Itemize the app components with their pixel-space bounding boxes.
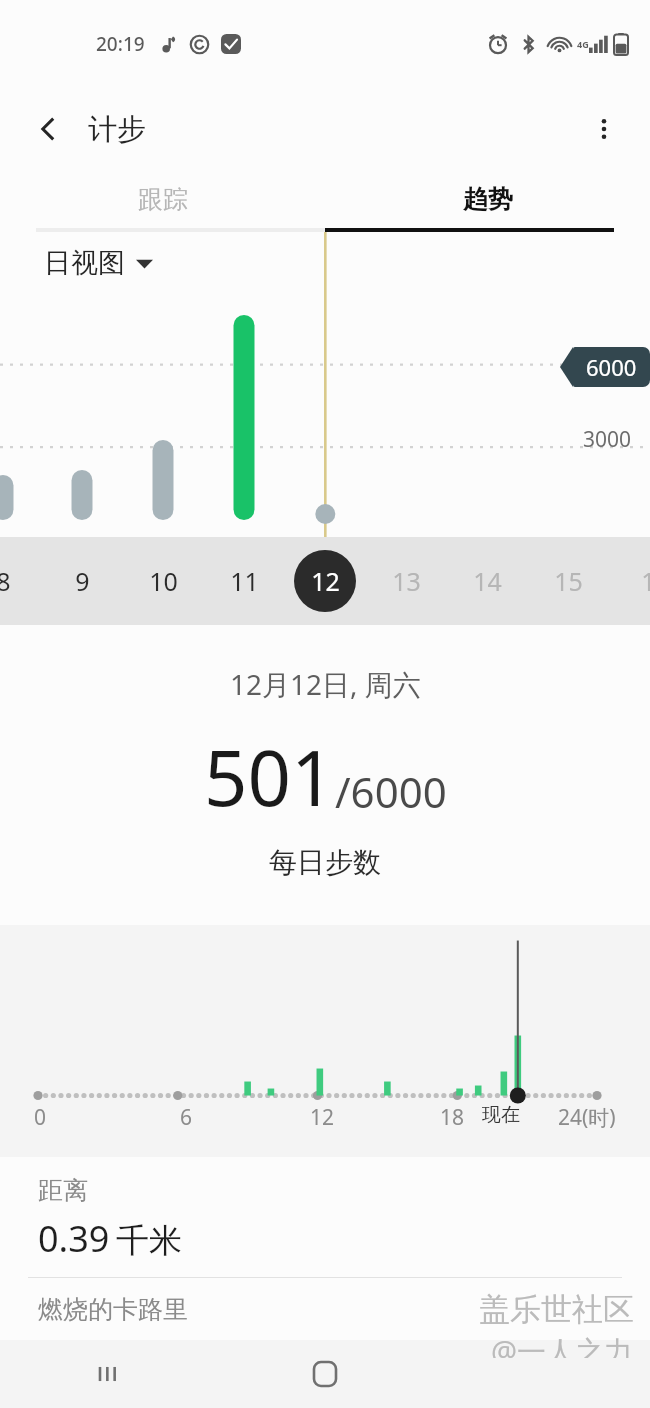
staticText: 501 (204, 725, 335, 829)
staticText: 24(时) (558, 1103, 616, 1132)
staticText: 距离 (38, 1175, 88, 1206)
staticText: 3000 (583, 425, 632, 454)
button[interactable]: 11 (211, 548, 277, 614)
button[interactable]: 跟踪 (0, 170, 325, 228)
staticText: 12月12日, 周六 (230, 665, 421, 703)
staticText: /6000 (335, 763, 447, 820)
button[interactable]: 10 (130, 548, 196, 614)
staticText: 12 (310, 1103, 335, 1132)
staticText: 6 (180, 1103, 193, 1132)
staticText: 14 (473, 564, 502, 598)
staticText: 8 (0, 564, 11, 598)
button[interactable]: 13 (373, 548, 439, 614)
staticText: 趋势 (463, 184, 513, 215)
button[interactable]: Recents (0, 1340, 216, 1408)
button[interactable]: Home (216, 1340, 433, 1408)
staticText: 4G (577, 38, 589, 50)
button[interactable]: Back (433, 1340, 650, 1408)
button[interactable]: 12 (292, 548, 358, 614)
staticText: @一人之力 (491, 1331, 634, 1358)
button[interactable]: 燃烧的卡路里 (0, 1278, 650, 1324)
button[interactable]: 8 (0, 548, 36, 614)
staticText: 现在 (482, 1103, 520, 1127)
staticText: 15 (554, 564, 583, 598)
staticText: 11 (230, 564, 259, 598)
staticText: 0.39 (38, 1214, 110, 1263)
staticText: 6000 (586, 352, 637, 382)
staticText: 10 (149, 564, 178, 598)
staticText: 13 (392, 564, 421, 598)
button[interactable]: Back (22, 103, 74, 155)
staticText: 9 (75, 564, 90, 598)
staticText: 燃烧的卡路里 (38, 1294, 188, 1324)
staticText: 跟踪 (138, 184, 188, 215)
staticText: 1 (641, 564, 650, 598)
button[interactable]: 距离 (0, 1157, 650, 1277)
button[interactable]: 9 (49, 548, 115, 614)
staticText: 计步 (88, 111, 146, 148)
staticText: 0 (34, 1103, 47, 1132)
button[interactable]: 15 (535, 548, 601, 614)
button[interactable]: 1 (615, 548, 650, 614)
staticText: 12 (311, 564, 340, 598)
staticText: 千米 (116, 1220, 182, 1262)
button[interactable]: More options (578, 103, 630, 155)
button[interactable]: 趋势 (325, 170, 650, 228)
staticText: 20:19 (96, 31, 145, 57)
staticText: 每日步数 (269, 845, 381, 880)
staticText: 盖乐世社区 (479, 1290, 634, 1329)
staticText: 18 (440, 1103, 465, 1132)
staticText: 日视图 (44, 246, 125, 280)
button[interactable]: 14 (454, 548, 520, 614)
button[interactable]: 日视图 (44, 246, 153, 280)
